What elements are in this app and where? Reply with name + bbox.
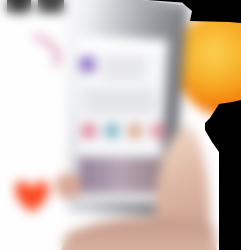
other: Hand holding phone illustration: [0, 0, 241, 250]
